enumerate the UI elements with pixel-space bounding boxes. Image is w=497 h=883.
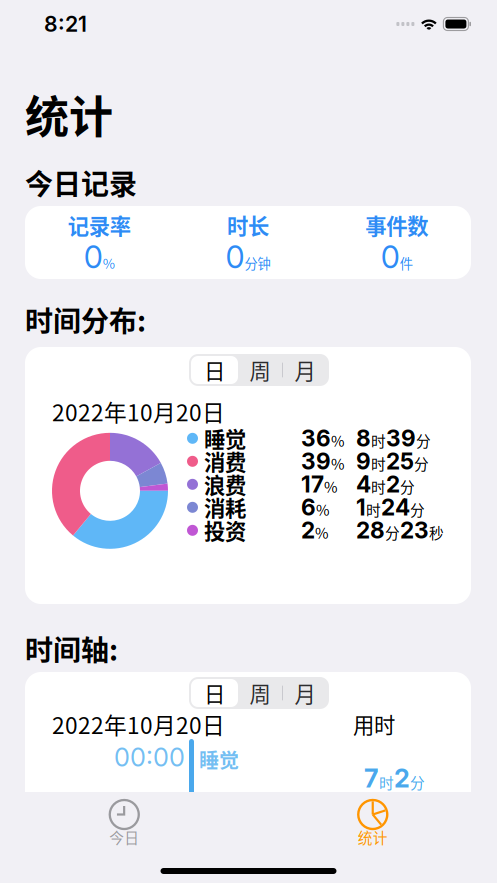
staticText: 事件数 (365, 210, 428, 240)
staticText: 分 (414, 453, 429, 474)
staticText: 消费 (204, 446, 246, 477)
staticText: 睡觉 (199, 745, 239, 774)
staticText: 今日 (109, 826, 139, 848)
staticText: 时长 (227, 210, 269, 240)
staticText: 4 (356, 471, 371, 498)
staticText: 分 (410, 499, 425, 520)
button[interactable]: 周 (238, 679, 282, 707)
button[interactable]: 月 (283, 356, 327, 384)
staticText: 消耗 (204, 492, 246, 523)
staticText: 0 (381, 238, 400, 275)
staticText: 记录率 (68, 210, 131, 240)
staticText: 24 (381, 494, 410, 521)
staticText: 2022年10月20日 (52, 708, 225, 740)
staticText: % (324, 476, 338, 497)
staticText: 周 (249, 678, 270, 708)
staticText: 日 (204, 355, 225, 385)
staticText: 23 (400, 517, 429, 544)
staticText: 7 (364, 763, 379, 794)
staticText: 2022年10月20日 (52, 395, 225, 428)
staticText: 统计 (358, 826, 388, 848)
staticText: 件 (400, 253, 413, 272)
staticText: 时间轴: (25, 628, 118, 669)
staticText: 17 (301, 471, 324, 498)
staticText: 2 (386, 471, 400, 498)
staticText: 分 (400, 476, 415, 497)
staticText: 投资 (204, 515, 246, 546)
staticText: 月 (294, 355, 315, 385)
staticText: 6 (301, 494, 316, 521)
staticText: 25 (386, 448, 414, 475)
staticText: 秒 (429, 522, 444, 543)
staticText: 9 (356, 448, 371, 475)
staticText: 8:21 (44, 11, 87, 37)
staticText: 时 (366, 499, 381, 520)
button[interactable]: 今日 (0, 800, 248, 845)
staticText: 日 (204, 678, 225, 708)
staticText: 周 (249, 355, 270, 385)
staticText: % (331, 453, 345, 474)
staticText: 今日记录 (25, 162, 137, 203)
button[interactable]: 日 (191, 679, 238, 707)
staticText: 分 (385, 522, 400, 543)
staticText: 8 (356, 425, 371, 452)
button[interactable]: 日 (191, 356, 238, 384)
staticText: 用时 (353, 709, 395, 739)
staticText: 28 (356, 517, 385, 544)
staticText: 分 (410, 771, 425, 793)
staticText: % (316, 499, 330, 520)
staticText: 浪费 (204, 469, 246, 500)
staticText: 36 (301, 425, 331, 452)
staticText: 时 (371, 430, 386, 451)
button[interactable]: 周 (238, 356, 282, 384)
staticText: 分 (416, 430, 431, 451)
staticText: 1 (356, 494, 366, 521)
staticText: 统计 (25, 82, 113, 146)
staticText: 2 (301, 517, 315, 544)
staticText: 时 (371, 453, 386, 474)
staticText: % (103, 253, 115, 272)
staticText: % (315, 522, 329, 543)
staticText: 39 (301, 448, 331, 475)
staticText: 00:00 (114, 742, 185, 773)
staticText: 月 (294, 678, 315, 708)
staticText: 时 (371, 476, 386, 497)
button[interactable]: 月 (283, 679, 327, 707)
staticText: 睡觉 (204, 423, 246, 454)
staticText: 时 (379, 771, 394, 793)
staticText: % (331, 430, 345, 451)
staticText: 0 (84, 238, 103, 275)
button[interactable]: 统计 (248, 800, 497, 845)
staticText: 分钟 (244, 253, 270, 272)
staticText: 39 (386, 425, 416, 452)
staticText: 时间分布: (25, 299, 146, 340)
staticText: 2 (394, 763, 410, 794)
staticText: 0 (225, 238, 244, 275)
